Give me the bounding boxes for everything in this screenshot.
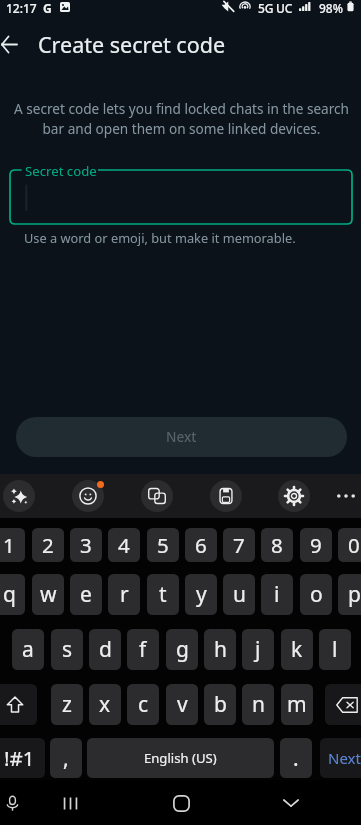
staticText: z	[62, 690, 72, 719]
staticText: 9	[310, 531, 322, 559]
button[interactable]: Recent apps	[56, 789, 84, 817]
staticText: w	[40, 580, 57, 609]
button[interactable]: 7	[223, 528, 255, 562]
button[interactable]: s	[51, 629, 83, 670]
button[interactable]: Shift	[0, 684, 37, 725]
button[interactable]: Assistant	[3, 480, 35, 512]
button[interactable]: Hide keyboard	[277, 789, 305, 817]
staticText: 98%	[319, 0, 343, 13]
staticText: Next	[328, 748, 361, 768]
staticText: l	[332, 635, 338, 664]
button[interactable]: 2	[32, 528, 64, 562]
button[interactable]: 8	[261, 528, 293, 562]
button[interactable]: Back	[0, 22, 28, 67]
button[interactable]: p	[338, 574, 361, 615]
staticText: ,	[63, 744, 69, 773]
button[interactable]: c	[127, 684, 159, 725]
staticText: 6	[195, 531, 207, 559]
staticText: v	[177, 690, 188, 719]
staticText: 3	[80, 531, 92, 559]
staticText: j	[255, 635, 261, 664]
staticText: Use a word or emoji, but make it memorab…	[24, 229, 296, 246]
staticText: k	[291, 635, 303, 664]
button[interactable]: !#1	[0, 738, 45, 778]
staticText: d	[99, 635, 112, 664]
button[interactable]: u	[223, 574, 255, 615]
staticText: 12:17	[6, 0, 37, 13]
button[interactable]: g	[166, 629, 198, 670]
button[interactable]: a	[12, 629, 44, 670]
staticText: Create secret code	[38, 30, 226, 59]
button[interactable]: x	[89, 684, 121, 725]
staticText: u	[233, 580, 246, 609]
button[interactable]: r	[108, 574, 140, 615]
button[interactable]: y	[185, 574, 217, 615]
button[interactable]: b	[204, 684, 236, 725]
staticText: e	[80, 580, 92, 609]
staticText: 5G	[258, 0, 274, 13]
staticText: i	[274, 580, 280, 609]
button[interactable]: Keyboard settings	[278, 480, 310, 512]
staticText: 7	[233, 531, 245, 559]
button[interactable]: n	[242, 684, 274, 725]
staticText: y	[196, 580, 207, 609]
button[interactable]: 0	[338, 528, 361, 562]
staticText: .	[293, 744, 299, 773]
staticText: f	[139, 635, 147, 664]
button[interactable]: 4	[108, 528, 140, 562]
button[interactable]: Next	[320, 738, 361, 778]
staticText: !#1	[4, 744, 35, 772]
button[interactable]: i	[261, 574, 293, 615]
staticText: G	[43, 0, 52, 13]
button[interactable]: d	[89, 629, 121, 670]
staticText: c	[138, 690, 149, 719]
button[interactable]: m	[281, 684, 313, 725]
staticText: 8	[271, 531, 283, 559]
button[interactable]: More options	[333, 481, 359, 511]
button[interactable]: Home	[165, 787, 197, 819]
staticText: s	[62, 635, 73, 664]
staticText: English (US)	[144, 749, 217, 767]
button[interactable]: 3	[70, 528, 102, 562]
staticText: A secret code lets you find locked chats…	[14, 99, 349, 138]
button[interactable]: 1	[0, 528, 25, 562]
staticText: UC	[276, 0, 293, 13]
button[interactable]: j	[242, 629, 274, 670]
button[interactable]: z	[51, 684, 83, 725]
staticText: n	[252, 690, 265, 719]
button[interactable]: q	[0, 574, 25, 615]
button[interactable]: Backspace	[325, 684, 361, 725]
button[interactable]: t	[147, 574, 179, 615]
button[interactable]: h	[204, 629, 236, 670]
button[interactable]: 6	[185, 528, 217, 562]
button[interactable]: 9	[300, 528, 332, 562]
button[interactable]: Voice input	[0, 787, 28, 819]
button[interactable]: 5	[147, 528, 179, 562]
staticText: Secret code	[25, 162, 97, 180]
staticText: g	[176, 635, 189, 664]
button[interactable]: v	[166, 684, 198, 725]
staticText: r	[120, 580, 129, 609]
staticText: o	[310, 580, 323, 609]
button[interactable]: k	[281, 629, 313, 670]
button[interactable]: o	[300, 574, 332, 615]
staticText: Next	[166, 428, 197, 446]
button[interactable]	[10, 170, 352, 224]
staticText: b	[214, 690, 227, 719]
button[interactable]: .	[280, 738, 312, 778]
button[interactable]: English (US)	[87, 738, 274, 778]
button[interactable]: ,	[50, 738, 82, 778]
button[interactable]: w	[32, 574, 64, 615]
button[interactable]: Translate	[141, 480, 173, 512]
button[interactable]: Clipboard	[210, 480, 242, 512]
staticText: t	[159, 580, 167, 609]
button[interactable]: l	[319, 629, 351, 670]
button[interactable]: e	[70, 574, 102, 615]
staticText: 1	[3, 531, 15, 559]
staticText: a	[22, 635, 34, 664]
staticText: h	[214, 635, 227, 664]
button[interactable]: Emoji	[72, 480, 104, 512]
button[interactable]: Next	[16, 417, 347, 457]
button[interactable]: f	[127, 629, 159, 670]
staticText: 5	[157, 531, 169, 559]
